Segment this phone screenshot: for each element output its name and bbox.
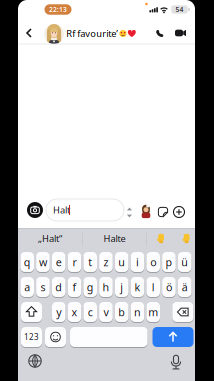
button[interactable]: w <box>36 251 50 272</box>
button[interactable]: p <box>162 251 176 272</box>
button[interactable]: Halte <box>85 228 143 248</box>
staticText: r <box>72 255 76 269</box>
button[interactable]: u <box>115 251 128 272</box>
staticText: „Halt“ <box>38 232 62 245</box>
staticText: Halte <box>103 232 125 245</box>
staticText: e <box>56 255 62 269</box>
button[interactable]: Avatar sticker <box>140 204 151 218</box>
staticText: 123 <box>24 332 39 342</box>
button[interactable]: Hand emoji <box>182 233 190 243</box>
button[interactable]: e <box>52 251 65 272</box>
button[interactable]: „Halt“ <box>21 228 79 248</box>
button[interactable]: y <box>52 301 65 322</box>
button[interactable]: r <box>68 251 81 272</box>
button[interactable]: q <box>20 251 34 272</box>
staticText: 22:13 <box>49 5 67 14</box>
button[interactable]: t <box>83 251 97 272</box>
staticText: g <box>87 280 94 294</box>
button[interactable]: h <box>99 276 113 297</box>
button[interactable]: d <box>52 276 65 297</box>
staticText: c <box>88 305 93 319</box>
button[interactable]: Emoji <box>45 326 66 347</box>
staticText: Halt <box>53 204 70 216</box>
staticText: d <box>55 280 62 294</box>
button[interactable]: Call <box>155 28 165 38</box>
button[interactable]: Stickers <box>158 207 168 217</box>
button[interactable]: Expand <box>126 207 133 218</box>
staticText: k <box>134 280 140 294</box>
button[interactable]: a <box>20 276 34 297</box>
staticText: x <box>71 305 77 319</box>
button[interactable]: Rf favourite <box>66 27 136 40</box>
button[interactable]: k <box>131 276 144 297</box>
button[interactable]: Back <box>24 27 34 38</box>
button[interactable]: b <box>115 301 128 322</box>
staticText: s <box>40 280 45 294</box>
button[interactable]: Delete <box>172 301 193 322</box>
button[interactable]: z <box>99 251 113 272</box>
staticText: o <box>150 255 156 269</box>
staticText: i <box>136 255 139 269</box>
staticText: j <box>120 280 123 294</box>
button[interactable]: Shift <box>21 301 42 322</box>
button[interactable]: Video call <box>175 28 186 38</box>
button[interactable]: More <box>173 206 184 217</box>
button[interactable]: Halt <box>46 199 124 221</box>
button[interactable]: Dictate <box>169 354 183 369</box>
button[interactable]: Next keyboard <box>28 354 41 367</box>
button[interactable]: s <box>36 276 50 297</box>
button[interactable]: v <box>99 301 113 322</box>
button[interactable]: o <box>146 251 160 272</box>
staticText: f <box>72 280 76 294</box>
button[interactable]: ö <box>162 276 176 297</box>
button[interactable]: n <box>131 301 144 322</box>
staticText: a <box>24 280 30 294</box>
staticText: b <box>118 305 125 319</box>
staticText: ä <box>182 280 188 294</box>
staticText: v <box>103 305 108 319</box>
button[interactable]: Camera <box>27 202 43 218</box>
staticText: 54 <box>175 5 183 14</box>
staticText: p <box>165 255 172 269</box>
button[interactable]: i <box>131 251 144 272</box>
button[interactable]: f <box>68 276 81 297</box>
button[interactable]: x <box>68 301 81 322</box>
staticText: Rf favourite’ <box>66 27 118 40</box>
staticText: ü <box>181 255 188 269</box>
button[interactable]: ä <box>178 276 191 297</box>
staticText: u <box>118 255 125 269</box>
button[interactable]: Profile <box>44 24 64 44</box>
button[interactable]: Space <box>70 326 147 347</box>
staticText: z <box>103 255 108 269</box>
staticText: h <box>102 280 109 294</box>
staticText: n <box>134 305 141 319</box>
button[interactable]: Send <box>152 327 193 347</box>
staticText: l <box>152 280 155 294</box>
staticText: m <box>148 305 158 319</box>
button[interactable]: 123 <box>21 326 42 347</box>
staticText: ö <box>166 280 172 294</box>
button[interactable]: j <box>115 276 128 297</box>
staticText: t <box>88 255 92 269</box>
button[interactable]: c <box>83 301 97 322</box>
staticText: y <box>56 305 61 319</box>
button[interactable]: ü <box>178 251 191 272</box>
button[interactable]: g <box>83 276 97 297</box>
button[interactable]: Hand emoji <box>156 233 164 243</box>
staticText: w <box>39 255 47 269</box>
staticText: q <box>24 255 31 269</box>
button[interactable]: l <box>146 276 160 297</box>
button[interactable]: m <box>146 301 160 322</box>
